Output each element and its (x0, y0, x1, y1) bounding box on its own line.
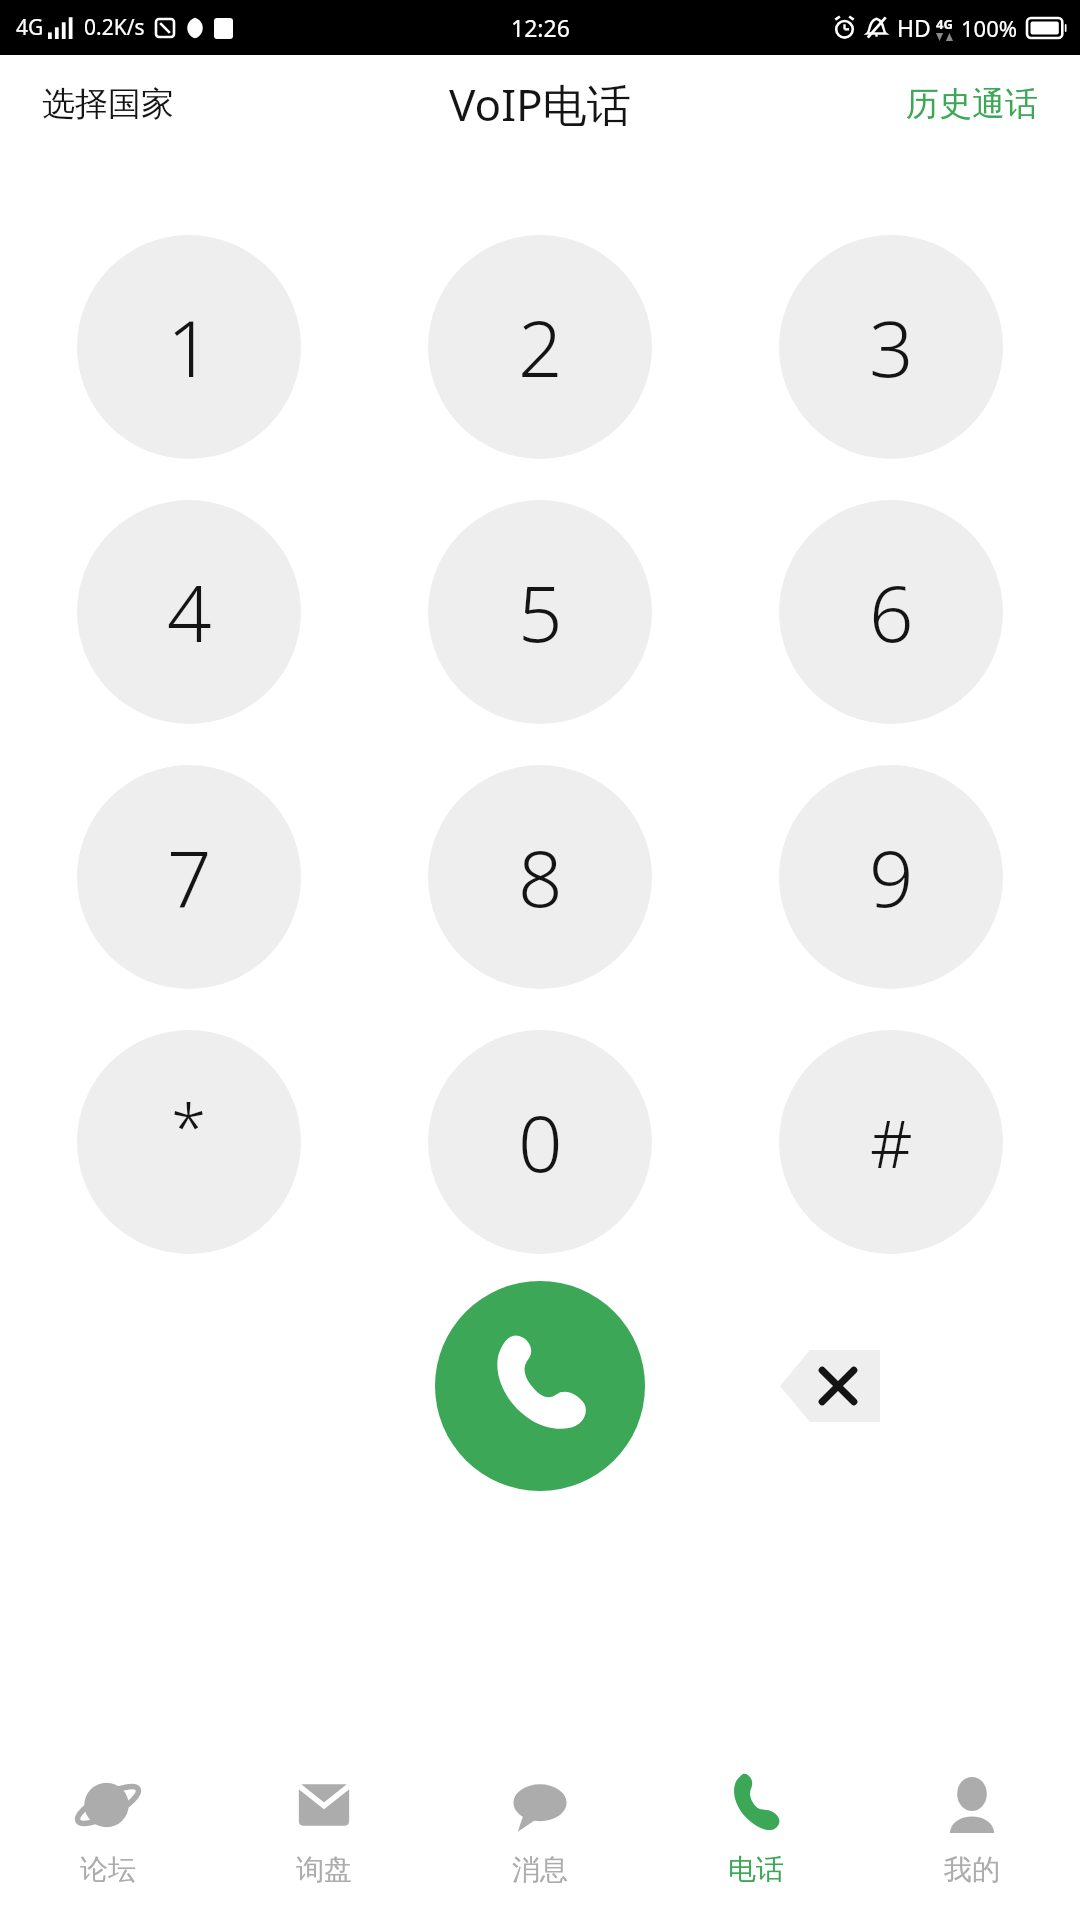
staticText: 4 (167, 559, 212, 665)
staticText: 5 (518, 559, 563, 665)
staticText: 论坛 (80, 1852, 136, 1887)
staticText: 我的 (944, 1852, 1000, 1887)
staticText: 6 (869, 559, 914, 665)
staticText: # (870, 1097, 913, 1187)
staticText: VoIP电话 (449, 74, 631, 134)
staticText: 消息 (512, 1852, 568, 1887)
button[interactable]: * (77, 1030, 301, 1254)
staticText: 2 (518, 294, 563, 400)
staticText: 4G (936, 15, 953, 33)
button[interactable]: 消息 (432, 1756, 648, 1906)
button[interactable]: 论坛 (0, 1756, 216, 1906)
button[interactable]: Delete (780, 1350, 880, 1422)
button[interactable]: 6 (779, 500, 1003, 724)
button[interactable]: 8 (428, 765, 652, 989)
button[interactable]: # (779, 1030, 1003, 1254)
staticText: 询盘 (296, 1852, 352, 1887)
staticText: 选择国家 (42, 83, 174, 125)
button[interactable]: 5 (428, 500, 652, 724)
button[interactable]: 2 (428, 235, 652, 459)
button[interactable]: 7 (77, 765, 301, 989)
staticText: HD (897, 12, 931, 43)
button[interactable]: Call (435, 1281, 645, 1491)
button[interactable]: 0 (428, 1030, 652, 1254)
staticText: 9 (869, 824, 914, 930)
staticText: 12:26 (511, 12, 570, 43)
staticText: 4G (16, 13, 44, 42)
button[interactable]: 电话 (648, 1756, 864, 1906)
staticText: 0.2K/s (84, 13, 145, 42)
staticText: 8 (518, 824, 563, 930)
staticText: 7 (167, 824, 212, 930)
staticText: 1 (167, 294, 212, 400)
staticText: 电话 (728, 1852, 784, 1887)
button[interactable]: 历史通话 (864, 65, 1080, 143)
button[interactable]: 3 (779, 235, 1003, 459)
staticText: 0 (518, 1089, 563, 1195)
button[interactable]: 4 (77, 500, 301, 724)
button[interactable]: 我的 (864, 1756, 1080, 1906)
staticText: * (171, 1083, 207, 1170)
button[interactable]: 询盘 (216, 1756, 432, 1906)
button[interactable]: 1 (77, 235, 301, 459)
staticText: 3 (869, 294, 914, 400)
button[interactable]: 9 (779, 765, 1003, 989)
staticText: 历史通话 (906, 83, 1038, 125)
button[interactable]: 选择国家 (0, 65, 216, 143)
staticText: 100% (961, 13, 1018, 43)
